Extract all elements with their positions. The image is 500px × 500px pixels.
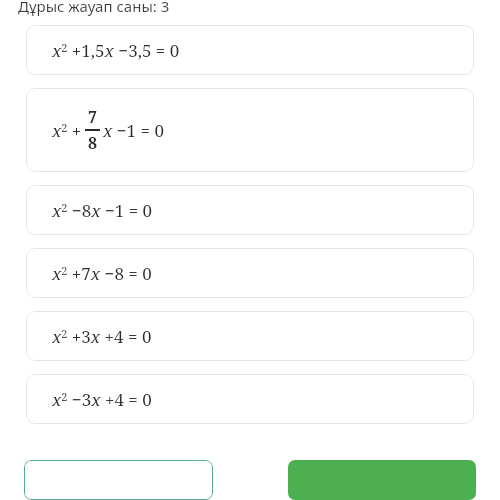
staticText: x2 −8x −1 = 0 — [52, 199, 153, 222]
staticText: 8 — [88, 132, 98, 154]
button[interactable]: x2 −8x −1 = 0 — [26, 185, 474, 235]
button[interactable]: x2 −3x +4 = 0 — [26, 374, 474, 424]
button[interactable]: x2 +7x −8 = 0 — [26, 248, 474, 298]
staticText: x −1 = 0 — [103, 119, 164, 142]
button[interactable]: Check answer — [288, 460, 476, 500]
button[interactable]: x2 +3x +4 = 0 — [26, 311, 474, 361]
button[interactable]: x2 +1,5x −3,5 = 0 — [26, 25, 474, 75]
staticText: x2 +3x +4 = 0 — [52, 325, 152, 348]
button[interactable]: x2 + — [26, 88, 474, 172]
staticText: x2 +7x −8 = 0 — [52, 262, 152, 285]
staticText: 7 — [88, 106, 98, 128]
button[interactable]: Show answer — [24, 460, 213, 500]
staticText: x2 + — [52, 119, 82, 142]
staticText: x2 +1,5x −3,5 = 0 — [52, 39, 180, 62]
staticText: Дұрыс жауап саны: 3 — [18, 0, 170, 16]
staticText: x2 −3x +4 = 0 — [52, 388, 152, 411]
